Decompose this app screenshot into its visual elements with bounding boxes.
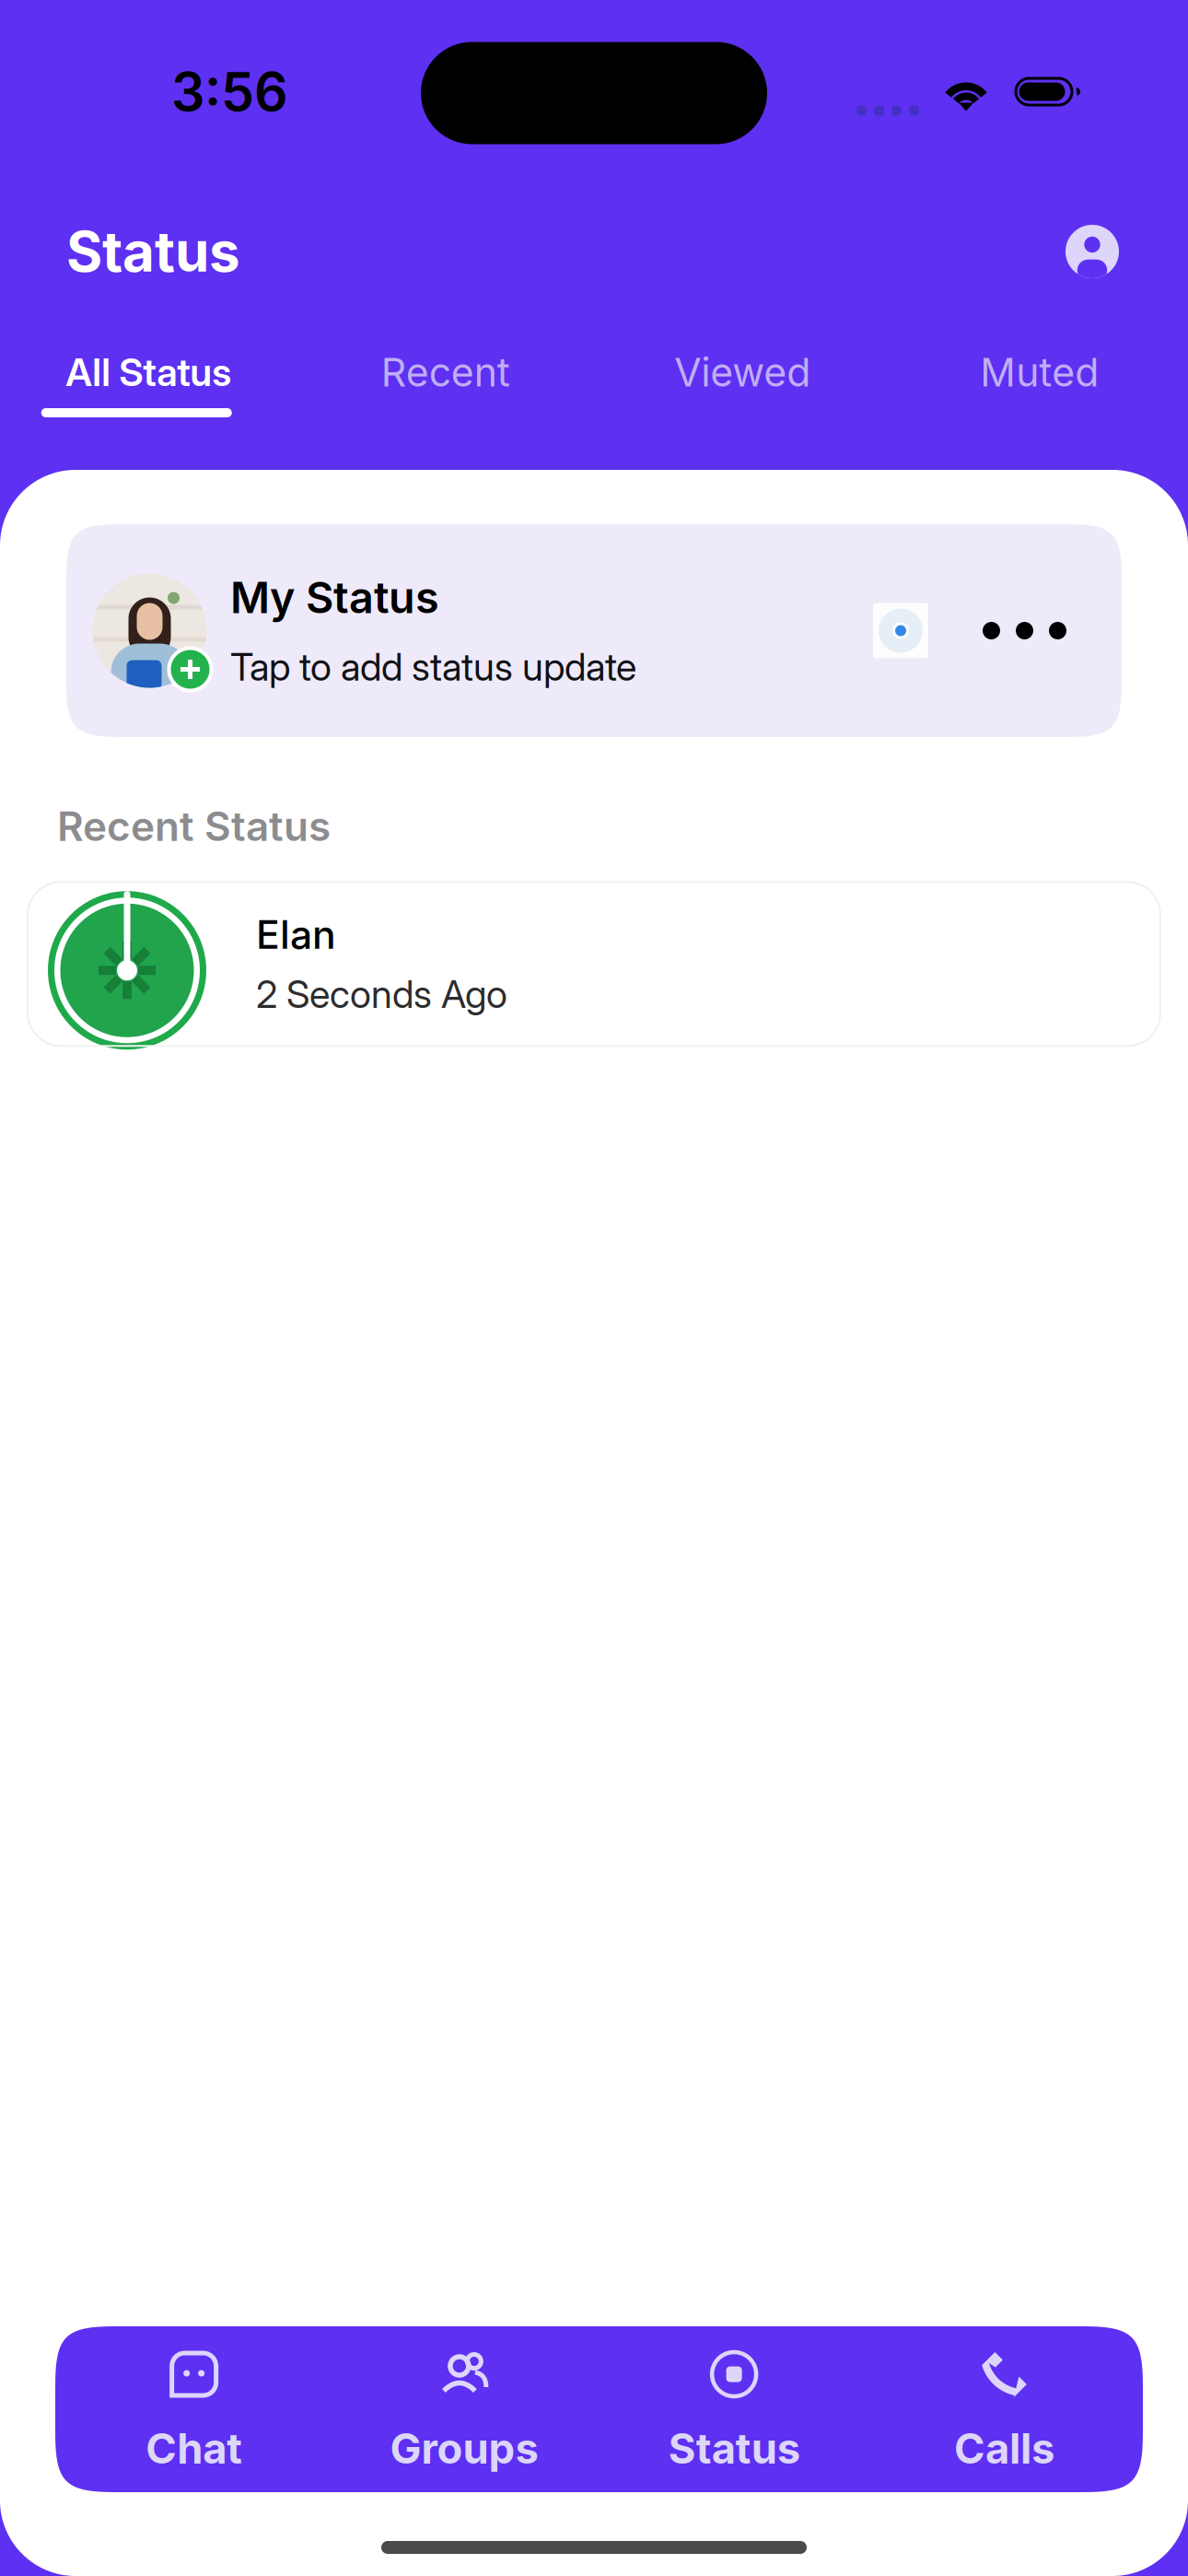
staticText: Calls	[954, 2423, 1054, 2474]
staticText: Tap to add status update	[230, 644, 636, 690]
button[interactable]: Status	[599, 2326, 869, 2492]
button[interactable]: Calls	[869, 2326, 1139, 2492]
staticText: 3:56	[171, 60, 288, 124]
staticText: Recent Status	[57, 802, 331, 851]
button[interactable]: Viewed	[594, 352, 891, 427]
staticText: Status	[668, 2423, 800, 2474]
staticText: Status	[66, 218, 240, 285]
button[interactable]: Elan	[28, 882, 1160, 1046]
staticText: All Status	[66, 349, 231, 395]
button[interactable]: Profile	[1057, 217, 1127, 287]
staticText: Viewed	[674, 348, 811, 396]
button[interactable]: Recent	[297, 352, 594, 427]
staticText: Groups	[390, 2423, 538, 2474]
button[interactable]: Chat	[59, 2326, 329, 2492]
staticText: Recent	[381, 348, 510, 396]
staticText: My Status	[230, 571, 439, 624]
staticText: Muted	[980, 348, 1099, 396]
staticText: 2 Seconds Ago	[256, 971, 507, 1017]
button[interactable]: All Status	[0, 352, 297, 427]
button[interactable]: Groups	[329, 2326, 599, 2492]
staticText: Elan	[256, 911, 336, 958]
button[interactable]: My Status	[66, 524, 1122, 737]
staticText: Chat	[146, 2423, 242, 2474]
button[interactable]: Muted	[891, 352, 1188, 427]
